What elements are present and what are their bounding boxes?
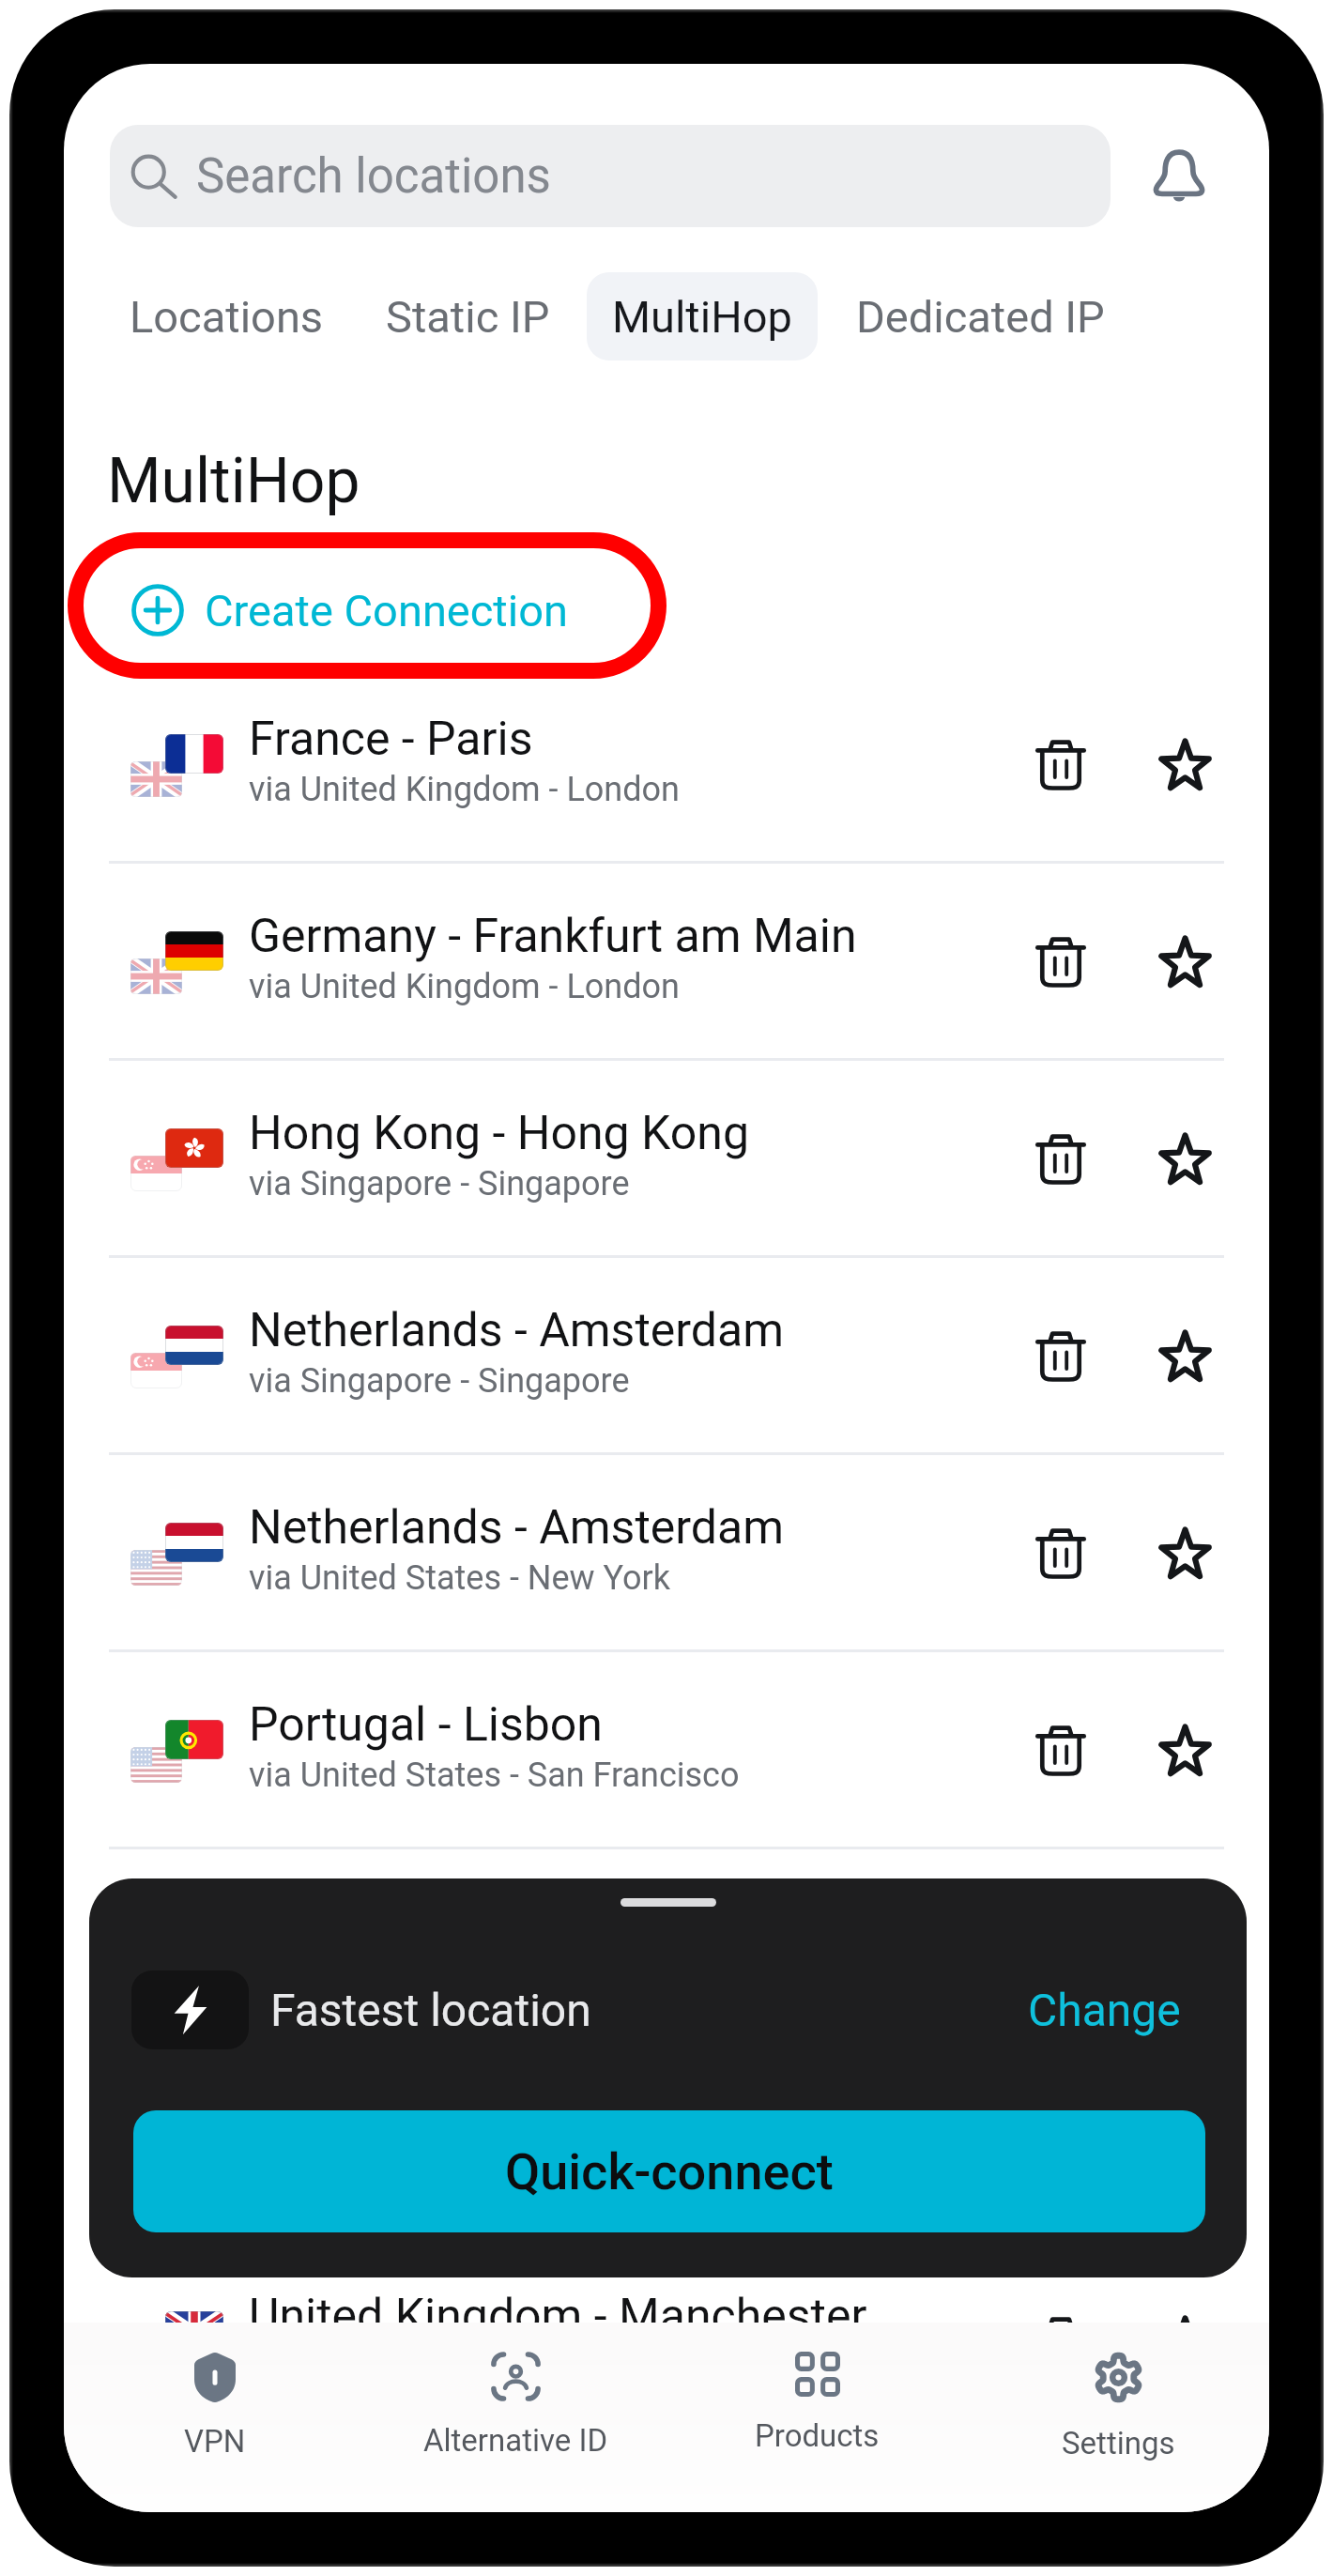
button[interactable]: Delete [1009,1895,1112,1999]
button[interactable]: Favourite [1133,2093,1236,2196]
button[interactable]: Favourite [1133,1501,1236,1604]
staticText: via United States - San Francisco [249,1756,740,1795]
button[interactable]: Favourite [1133,910,1236,1013]
staticText: Germany - Frankfurt am Main [249,909,857,964]
button[interactable]: Locations [104,272,349,360]
staticText: Netherlands - Amsterdam [249,1303,784,1358]
button[interactable]: United Kingdom - Manchester [64,2244,1269,2438]
staticText: via Singapore - Singapore [249,1164,630,1204]
button[interactable]: Delete [1009,1304,1112,1407]
button[interactable]: Delete [1009,1698,1112,1802]
button[interactable]: Portugal - Lisbon [64,1652,1269,1847]
button[interactable]: Search locations [110,125,1111,227]
button[interactable]: Delete [1009,713,1112,816]
staticText: via Germany - Frankfurt am Main [249,2150,738,2189]
button[interactable]: Favourite [1133,1698,1236,1802]
button[interactable]: Notifications [1123,119,1235,232]
staticText: United Kingdom - Manchester [249,2289,867,2344]
button[interactable]: Delete [1009,1107,1112,1210]
staticText: via United States - New York [249,1558,670,1598]
staticText: Netherlands - Amsterdam [249,1500,784,1556]
staticText: MultiHop [107,445,360,517]
staticText: Dedicated IP [856,291,1105,343]
button[interactable]: Delete [1009,2093,1112,2196]
button[interactable]: Alternative ID [365,2323,666,2512]
staticText: Quick-connect [505,2142,834,2201]
button[interactable]: Products [666,2323,968,2512]
button[interactable]: Favourite [1133,1304,1236,1407]
staticText: MultiHop [612,291,792,343]
button[interactable]: France - Paris [64,667,1269,861]
staticText: via United States - New York [249,2347,670,2386]
staticText: Portugal - Lisbon [249,1697,603,1753]
staticText: Alternative ID [423,2422,608,2459]
staticText: Hong Kong - Hong Kong [249,1106,750,1161]
button[interactable]: Netherlands - Amsterdam [64,1455,1269,1649]
button[interactable]: Netherlands - Amsterdam [64,1258,1269,1452]
button[interactable]: MultiHop [587,272,818,360]
staticText: Products [755,2417,880,2454]
button[interactable]: Create Connection [120,568,702,652]
staticText: Locations [130,291,324,343]
button[interactable]: Favourite [1133,1107,1236,1210]
button[interactable]: Sweden - Stockholm [64,2047,1269,2241]
staticText: via United Kingdom - London [249,967,680,1006]
button[interactable]: VPN [64,2323,365,2512]
button[interactable]: Hong Kong - Hong Kong [64,1061,1269,1255]
button[interactable]: Singapore - Singapore [64,1849,1269,2044]
staticText: Change [1028,1984,1181,2036]
button[interactable]: Delete [1009,910,1112,1013]
button[interactable]: Delete [1009,1501,1112,1604]
staticText: Sweden - Stockholm [249,2092,674,2147]
staticText: Singapore - Singapore [249,1894,707,1950]
button[interactable]: Dedicated IP [831,272,1130,360]
button[interactable]: Favourite [1133,2290,1236,2393]
button[interactable]: Quick-connect [133,2110,1205,2232]
staticText: via United Kingdom - London [249,770,680,809]
button[interactable]: Germany - Frankfurt am Main [64,864,1269,1058]
button[interactable]: Delete [1009,2290,1112,2393]
staticText: Create Connection [205,585,568,636]
staticText: France - Paris [249,712,533,767]
staticText: Static IP [386,291,550,343]
staticText: via Singapore - Singapore [249,1361,630,1401]
button[interactable]: Change [1017,1970,1192,2049]
button[interactable]: Favourite [1133,713,1236,816]
staticText: VPN [184,2423,246,2460]
button[interactable]: Static IP [360,272,575,360]
staticText: Settings [1062,2425,1175,2461]
staticText: Fastest location [270,1984,591,2036]
button[interactable]: Settings [968,2323,1269,2512]
staticText: Search locations [196,148,551,205]
